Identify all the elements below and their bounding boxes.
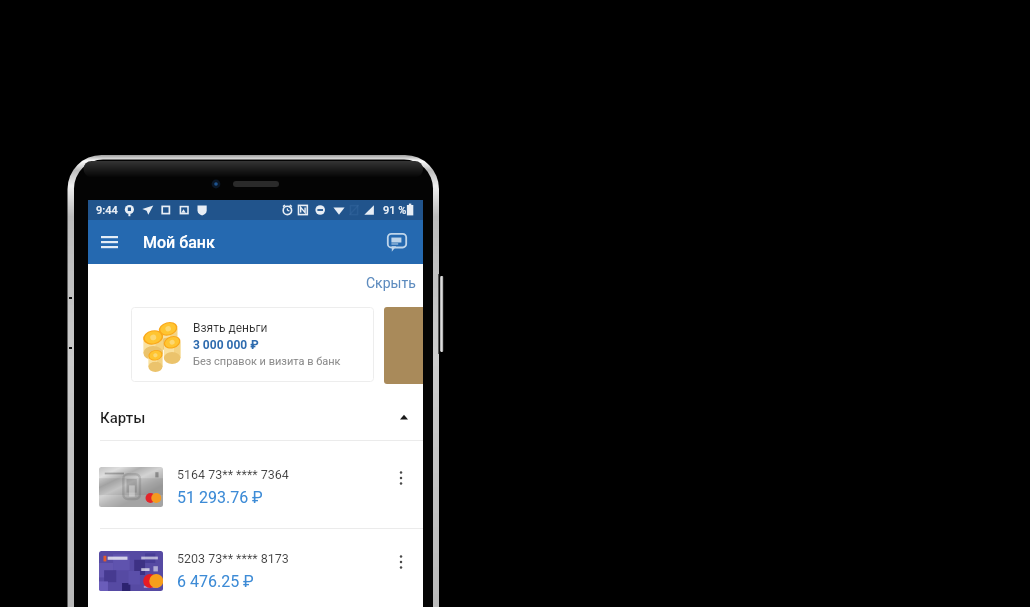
staticText: 5164 73** **** 7364 (177, 467, 289, 482)
button[interactable]: More options (386, 463, 416, 493)
staticText: 5203 73** **** 8173 (177, 551, 289, 566)
button[interactable]: Скрыть (359, 272, 423, 294)
button[interactable]: 5203 73** **** 8173 (88, 529, 423, 607)
button[interactable]: Collapse (393, 406, 415, 428)
button[interactable] (384, 307, 423, 384)
button[interactable]: Messages (378, 223, 416, 261)
staticText: 3 000 000 ₽ (193, 338, 259, 352)
staticText: 51 293.76 ₽ (177, 488, 263, 507)
button[interactable]: Menu (91, 224, 127, 260)
staticText: 91 % (383, 204, 407, 217)
staticText: Взять деньги (193, 321, 268, 335)
button[interactable]: More options (386, 547, 416, 577)
staticText: Скрыть (366, 275, 416, 291)
button[interactable]: Карты (88, 395, 423, 440)
staticText: Карты (100, 409, 146, 427)
staticText: Мой банк (143, 233, 215, 252)
staticText: 6 476.25 ₽ (177, 572, 254, 591)
button[interactable]: 5164 73** **** 7364 (88, 441, 423, 528)
staticText: Без справок и визита в банк (193, 355, 341, 368)
button[interactable]: Взять деньги (131, 307, 374, 382)
staticText: 9:44 (96, 204, 118, 217)
